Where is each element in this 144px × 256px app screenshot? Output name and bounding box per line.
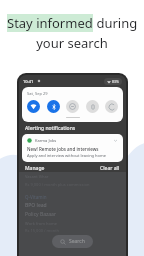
staticText: Stay informed [7,14,93,32]
button[interactable]: Quick setting toggle [105,100,118,113]
staticText: your search [36,34,108,52]
staticText: Policy Bazaar [25,211,56,218]
button[interactable]: Karma Jobs [22,134,123,162]
staticText: Karma Jobs [35,138,57,143]
staticText: Manage [25,165,45,172]
staticText: Alerting notifications [25,125,76,132]
staticText: Rs 9,000 / month plus commission [25,182,90,187]
staticText: BPO lead [25,202,47,209]
button[interactable]: Quick setting toggle [66,100,79,113]
staticText: Rs 15,000 / month [25,228,60,233]
staticText: Q-Vitamin [25,194,47,200]
staticText: 10:41 [23,79,34,84]
staticText: New! Remote jobs and interviews [27,146,99,152]
button[interactable]: Quick setting toggle [47,100,60,113]
staticText: 83% [112,79,119,84]
staticText: during [93,14,138,32]
button[interactable]: Manage [25,165,45,172]
staticText: Vasant Vihar [25,174,49,179]
staticText: Sat, Sep 29 [27,91,48,96]
button[interactable]: Clear all [100,165,120,172]
staticText: Work from home [25,221,57,226]
staticText: Search [69,238,85,245]
button[interactable]: Quick setting toggle [86,100,99,113]
staticText: Apply and interview without leaving home [27,153,107,158]
button[interactable]: Quick setting toggle [27,100,40,113]
staticText: Clear all [100,165,120,172]
button[interactable]: Search [52,235,93,248]
